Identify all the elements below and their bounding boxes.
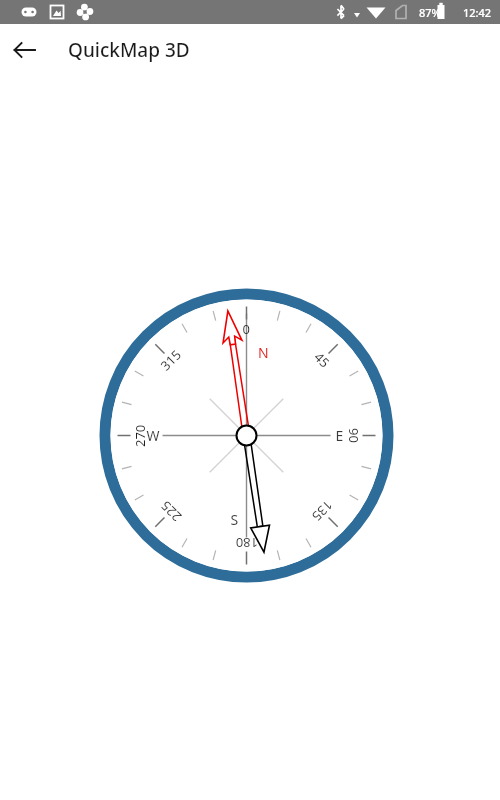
staticText: 12:42	[463, 5, 492, 20]
button[interactable]: Back	[0, 26, 48, 74]
staticText: QuickMap 3D	[68, 37, 190, 63]
staticText: 87%	[419, 5, 441, 20]
